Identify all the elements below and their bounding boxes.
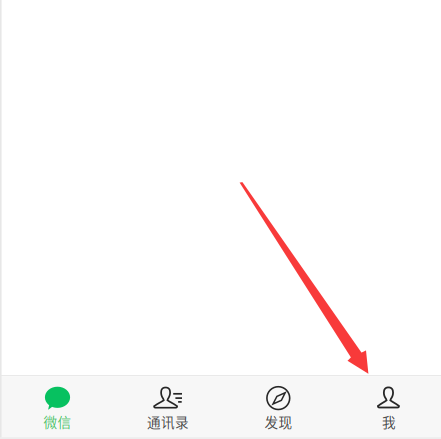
staticText: 微信 (43, 412, 71, 431)
button[interactable]: 我 (334, 376, 441, 439)
staticText: 通讯录 (147, 412, 189, 431)
button[interactable]: 通讯录 (113, 376, 223, 439)
button[interactable]: 发现 (223, 376, 334, 439)
staticText: 发现 (264, 412, 292, 431)
button[interactable]: 微信 (2, 376, 113, 439)
staticText: 我 (382, 412, 396, 431)
